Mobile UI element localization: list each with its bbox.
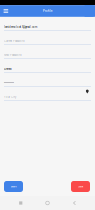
staticText: Your City: [4, 96, 16, 99]
staticText: Update: [10, 185, 16, 188]
staticText: Profile: [43, 9, 52, 12]
button[interactable]: Update: [4, 181, 23, 192]
button[interactable]: Recent apps: [15, 196, 27, 210]
button[interactable]: Back: [68, 196, 80, 210]
staticText: Current Password: [4, 40, 25, 43]
button[interactable]: Home: [41, 196, 53, 210]
staticText: ••••••••••: [4, 82, 14, 85]
button[interactable]: Logout: [71, 181, 90, 192]
button[interactable]: Menu: [1, 5, 10, 17]
staticText: Logout: [77, 185, 83, 188]
staticText: New Password: [4, 54, 22, 57]
staticText: lamidemoloaf.5@gmail.com: [4, 26, 37, 29]
staticText: Ahmed: [4, 68, 12, 71]
